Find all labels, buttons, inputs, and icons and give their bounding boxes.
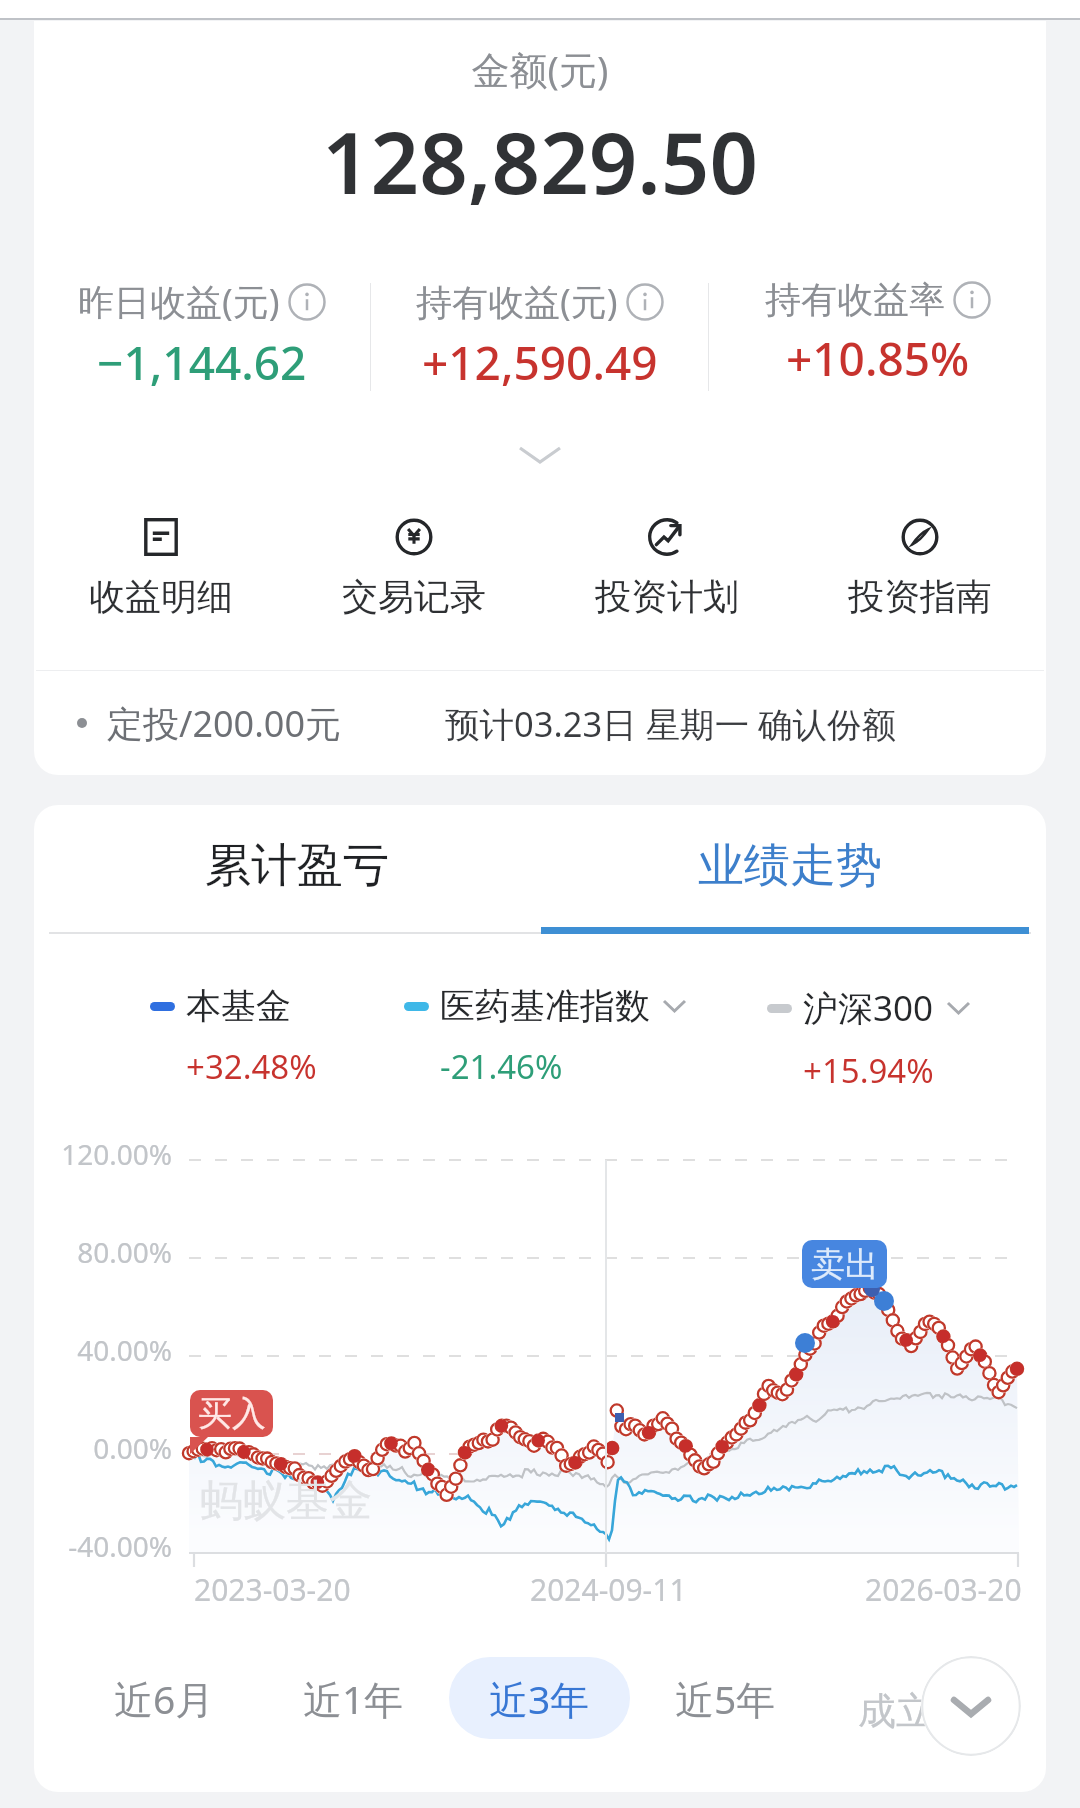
- button[interactable]: 展开更多区间: [921, 1656, 1021, 1756]
- button[interactable]: 沪深300: [767, 984, 970, 1093]
- staticText: 业绩走势: [698, 837, 882, 895]
- button[interactable]: 近6月: [74, 1657, 255, 1739]
- staticText: 成立来: [858, 1687, 972, 1735]
- staticText: 80.00%: [34, 1233, 172, 1271]
- staticText: 2023-03-20: [194, 1569, 351, 1610]
- staticText: 持有收益率: [765, 277, 945, 322]
- staticText: 预计03.23日 星期一 确认份额: [445, 700, 897, 747]
- staticText: +10.85%: [786, 327, 970, 390]
- staticText: 累计盈亏: [205, 837, 389, 895]
- button[interactable]: 买入: [190, 1390, 273, 1437]
- staticText: 近3年: [489, 1672, 590, 1725]
- staticText: 120.00%: [34, 1135, 172, 1173]
- button[interactable]: 昨日收益(元): [34, 277, 370, 394]
- staticText: 沪深300: [803, 984, 934, 1032]
- staticText: +15.94%: [803, 1048, 934, 1093]
- staticText: 2024-09-11: [530, 1569, 687, 1610]
- staticText: 近5年: [675, 1672, 776, 1725]
- staticText: 医药基准指数: [440, 984, 650, 1028]
- staticText: 128,829.50: [34, 103, 1046, 219]
- staticText: 投资指南: [848, 574, 992, 619]
- staticText: +32.48%: [186, 1044, 317, 1089]
- button[interactable]: 投资计划: [540, 518, 793, 619]
- staticText: 近6月: [114, 1672, 215, 1725]
- staticText: 40.00%: [34, 1331, 172, 1369]
- button[interactable]: 投资指南: [793, 518, 1046, 619]
- staticText: -21.46%: [440, 1044, 563, 1089]
- staticText: 投资计划: [595, 574, 739, 619]
- button[interactable]: 业绩走势: [675, 805, 905, 927]
- staticText: 近1年: [303, 1672, 404, 1725]
- button[interactable]: 交易记录: [287, 518, 540, 619]
- button[interactable]: 卖出: [802, 1240, 887, 1288]
- button[interactable]: 近3年: [449, 1657, 630, 1739]
- button[interactable]: 本基金: [150, 984, 317, 1089]
- staticText: 2026-03-20: [865, 1569, 1022, 1610]
- button[interactable]: 近5年: [635, 1657, 816, 1739]
- staticText: 定投/200.00元: [107, 699, 342, 748]
- staticText: 金额(元): [34, 43, 1046, 95]
- staticText: 交易记录: [342, 574, 486, 619]
- staticText: −1,144.62: [97, 331, 307, 394]
- staticText: 卖出: [811, 1243, 879, 1286]
- button[interactable]: 医药基准指数: [404, 984, 686, 1089]
- button[interactable]: 累计盈亏: [182, 805, 412, 927]
- staticText: 持有收益(元): [416, 277, 618, 326]
- staticText: +12,590.49: [422, 331, 658, 394]
- button[interactable]: 近1年: [263, 1657, 444, 1739]
- button[interactable]: 持有收益率: [709, 277, 1046, 390]
- staticText: -40.00%: [34, 1527, 172, 1565]
- button[interactable]: 持有收益(元): [371, 277, 708, 394]
- staticText: 0.00%: [34, 1429, 172, 1467]
- staticText: 买入: [198, 1392, 266, 1435]
- staticText: 本基金: [186, 984, 291, 1028]
- staticText: 收益明细: [89, 574, 233, 619]
- button[interactable]: 收益明细: [34, 518, 287, 619]
- staticText: 昨日收益(元): [78, 277, 280, 326]
- staticText: 蚂蚁基金: [200, 1474, 372, 1528]
